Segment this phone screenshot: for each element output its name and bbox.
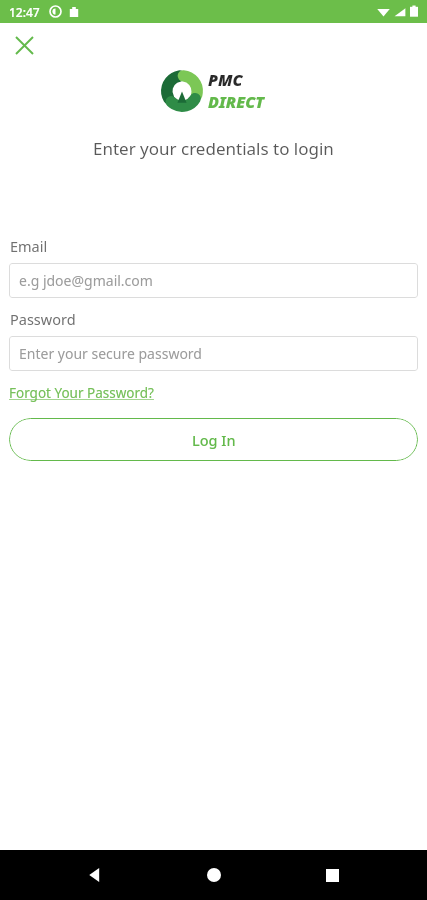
staticText: Enter your credentials to login xyxy=(93,137,334,160)
staticText: DIRECT xyxy=(208,91,265,113)
button[interactable]: e.g jdoe@gmail.com xyxy=(9,263,418,298)
button[interactable]: Back xyxy=(71,851,119,899)
staticText: Password xyxy=(10,309,76,329)
button[interactable]: Enter your secure password xyxy=(9,336,418,371)
staticText: 12:47 xyxy=(9,4,40,20)
staticText: Enter your secure password xyxy=(19,344,202,363)
button[interactable]: Home xyxy=(190,851,238,899)
staticText: e.g jdoe@gmail.com xyxy=(19,271,153,290)
button[interactable]: Close xyxy=(7,28,41,62)
staticText: Email xyxy=(10,236,48,256)
button[interactable]: Forgot Your Password? xyxy=(9,384,154,402)
button[interactable]: Recents xyxy=(308,851,356,899)
staticText: Log In xyxy=(192,430,236,450)
staticText: Forgot Your Password? xyxy=(9,384,154,402)
staticText: PMC xyxy=(208,69,243,91)
button[interactable]: Log In xyxy=(9,418,418,461)
